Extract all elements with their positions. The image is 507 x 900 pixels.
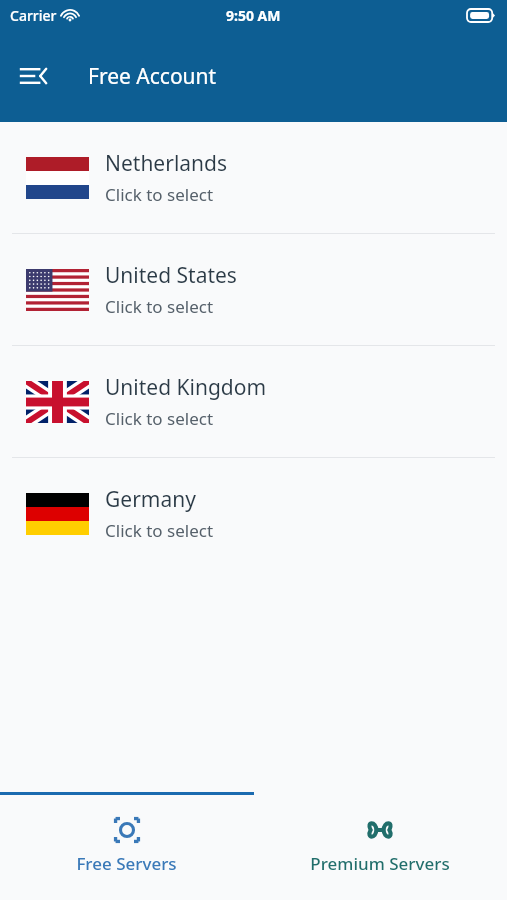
staticText: Premium Servers bbox=[310, 852, 450, 875]
staticText: Click to select bbox=[105, 407, 214, 430]
button[interactable]: United Kingdom bbox=[0, 346, 507, 457]
button[interactable]: United States bbox=[0, 234, 507, 345]
button[interactable]: Germany bbox=[0, 458, 507, 569]
staticText: United Kingdom bbox=[105, 373, 267, 402]
staticText: United States bbox=[105, 261, 237, 290]
staticText: Free Account bbox=[88, 62, 217, 91]
staticText: Germany bbox=[105, 485, 196, 514]
staticText: Click to select bbox=[105, 295, 214, 318]
staticText: Click to select bbox=[105, 183, 214, 206]
button[interactable]: Netherlands bbox=[0, 122, 507, 233]
staticText: Netherlands bbox=[105, 149, 228, 178]
staticText: 9:50 AM bbox=[226, 6, 281, 25]
staticText: Click to select bbox=[105, 519, 214, 542]
button[interactable]: Open navigation menu bbox=[10, 52, 58, 100]
button[interactable]: Premium Servers bbox=[253, 792, 507, 900]
staticText: Free Servers bbox=[76, 852, 177, 875]
staticText: Carrier bbox=[10, 6, 57, 25]
button[interactable]: Free Servers bbox=[0, 792, 253, 900]
